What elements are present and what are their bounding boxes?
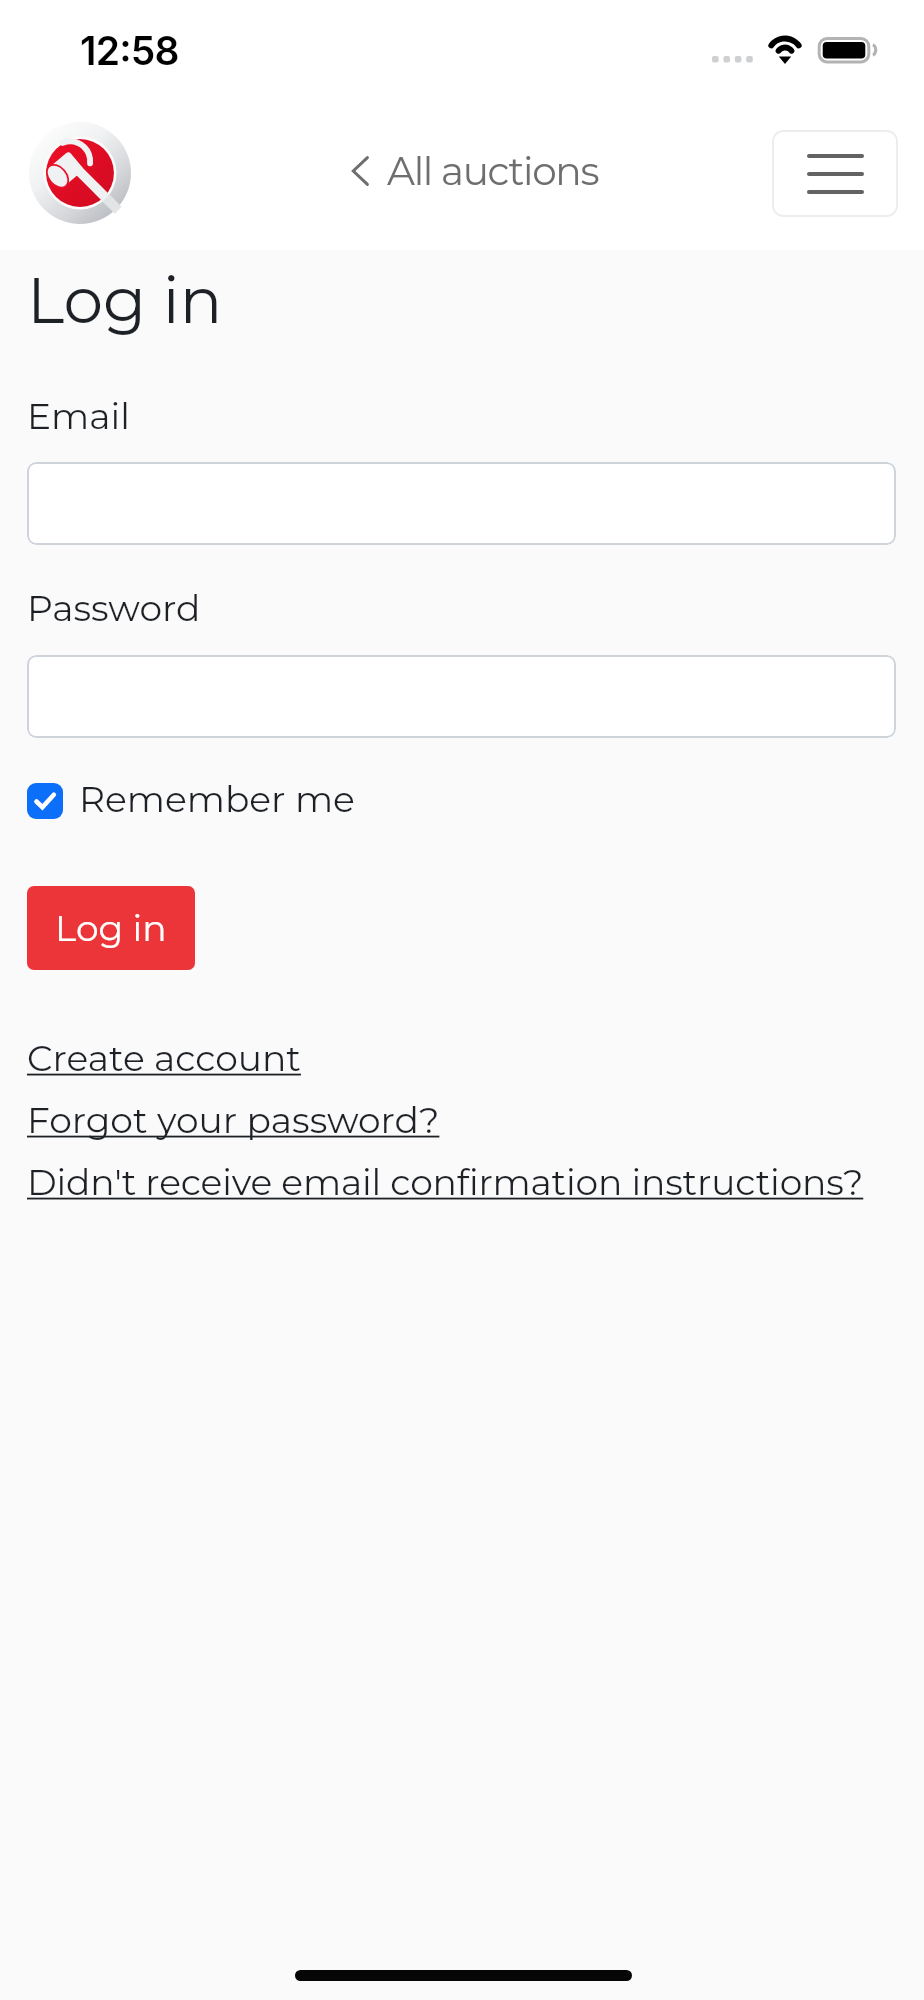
- staticText: Log in: [55, 906, 167, 950]
- button[interactable]: Email input: [27, 462, 896, 545]
- staticText: 12:58: [80, 27, 179, 74]
- button[interactable]: Create account: [27, 1036, 301, 1080]
- staticText: Remember me: [79, 777, 355, 821]
- staticText: Password: [27, 586, 201, 630]
- button[interactable]: Forgot your password?: [27, 1098, 440, 1142]
- staticText: Log in: [27, 262, 223, 339]
- staticText: Didn't receive email confirmation instru…: [27, 1160, 864, 1204]
- staticText: Create account: [27, 1036, 301, 1080]
- button[interactable]: Menu: [772, 130, 898, 217]
- button[interactable]: Didn't receive email confirmation instru…: [27, 1160, 864, 1204]
- button[interactable]: Home: [29, 122, 131, 224]
- button[interactable]: Log in: [27, 886, 195, 970]
- staticText: All auctions: [387, 147, 599, 195]
- button[interactable]: Remember me: [27, 777, 355, 821]
- button[interactable]: All auctions: [344, 140, 599, 202]
- staticText: Email: [27, 394, 130, 438]
- button[interactable]: Password input: [27, 655, 896, 738]
- staticText: Forgot your password?: [27, 1098, 440, 1142]
